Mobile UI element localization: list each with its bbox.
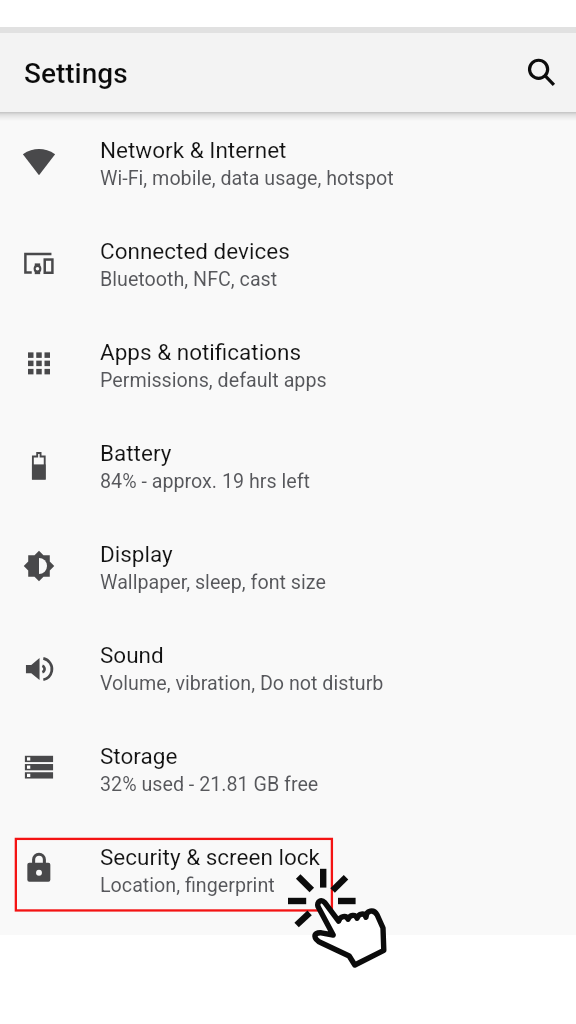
staticText: Apps & notifications [100, 339, 301, 365]
button[interactable]: Storage [0, 718, 576, 819]
button[interactable]: Battery [0, 415, 576, 516]
staticText: Connected devices [100, 238, 290, 264]
button[interactable]: Security & screen lock [0, 819, 576, 920]
button[interactable]: Apps & notifications [0, 314, 576, 415]
staticText: Bluetooth, NFC, cast [100, 268, 278, 291]
staticText: Volume, vibration, Do not disturb [100, 672, 384, 695]
staticText: Display [100, 541, 173, 567]
staticText: Network & Internet [100, 137, 287, 163]
staticText: 32% used - 21.81 GB free [100, 773, 319, 796]
staticText: Wi-Fi, mobile, data usage, hotspot [100, 167, 394, 190]
button[interactable]: Search [512, 45, 568, 101]
staticText: Storage [100, 743, 178, 769]
staticText: 84% - approx. 19 hrs left [100, 470, 311, 493]
button[interactable]: Connected devices [0, 213, 576, 314]
button[interactable]: Sound [0, 617, 576, 718]
button[interactable]: Display [0, 516, 576, 617]
staticText: Sound [100, 642, 164, 668]
staticText: Security & screen lock [100, 844, 320, 870]
staticText: Permissions, default apps [100, 369, 327, 392]
button[interactable]: Network & Internet [0, 112, 576, 213]
staticText: Wallpaper, sleep, font size [100, 571, 326, 594]
staticText: Battery [100, 440, 172, 466]
staticText: Location, fingerprint [100, 874, 275, 897]
staticText: Settings [24, 57, 128, 90]
